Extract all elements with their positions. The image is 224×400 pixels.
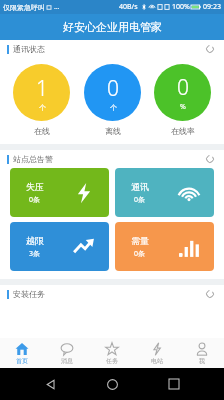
button[interactable]: 电站: [134, 338, 179, 368]
button[interactable]: 通讯: [115, 168, 214, 217]
staticText: 0条: [29, 195, 41, 205]
staticText: 通讯: [131, 181, 149, 192]
staticText: 好安心企业用电管家: [63, 20, 162, 34]
button[interactable]: 需量: [115, 222, 214, 271]
staticText: 失压: [26, 181, 44, 192]
staticText: 0条: [134, 249, 146, 259]
staticText: %: [180, 102, 186, 112]
staticText: 需量: [131, 235, 149, 246]
staticText: 0条: [134, 195, 146, 205]
button[interactable]: 0: [84, 64, 141, 136]
staticText: 首页: [16, 357, 28, 365]
button[interactable]: 刷新: [203, 42, 217, 56]
button[interactable]: 越限: [10, 222, 109, 271]
staticText: 安装任务: [13, 289, 45, 299]
button[interactable]: 刷新: [203, 152, 217, 166]
button[interactable]: 0: [154, 64, 211, 136]
button[interactable]: 我: [179, 338, 224, 368]
staticText: 仅限紧急呼叫: [3, 3, 45, 12]
button[interactable]: Home: [100, 372, 124, 396]
staticText: 0: [107, 74, 119, 103]
staticText: 1: [36, 74, 48, 103]
staticText: 100%: [172, 2, 190, 12]
staticText: 电站: [151, 357, 163, 365]
staticText: 在线率: [171, 126, 195, 136]
staticText: 09:23: [203, 2, 221, 12]
staticText: 通讯状态: [13, 44, 45, 54]
staticText: 任务: [106, 357, 118, 365]
button[interactable]: Recents: [162, 372, 186, 396]
staticText: …: [54, 2, 60, 12]
staticText: 3条: [29, 249, 41, 259]
staticText: 离线: [105, 126, 121, 136]
staticText: 个: [39, 103, 46, 112]
button[interactable]: 首页: [0, 338, 44, 368]
button[interactable]: 消息: [44, 338, 89, 368]
button[interactable]: 失压: [10, 168, 109, 217]
button[interactable]: 刷新: [203, 287, 217, 301]
staticText: 站点总告警: [13, 154, 53, 164]
staticText: 0: [177, 73, 189, 102]
button[interactable]: Back: [38, 372, 62, 396]
staticText: 越限: [26, 235, 44, 246]
staticText: 消息: [61, 357, 73, 365]
staticText: 在线: [34, 126, 50, 136]
button[interactable]: 1: [13, 64, 70, 136]
staticText: 我: [199, 357, 205, 365]
staticText: 个: [110, 103, 117, 112]
staticText: 40B/s: [119, 2, 138, 12]
button[interactable]: 任务: [89, 338, 134, 368]
